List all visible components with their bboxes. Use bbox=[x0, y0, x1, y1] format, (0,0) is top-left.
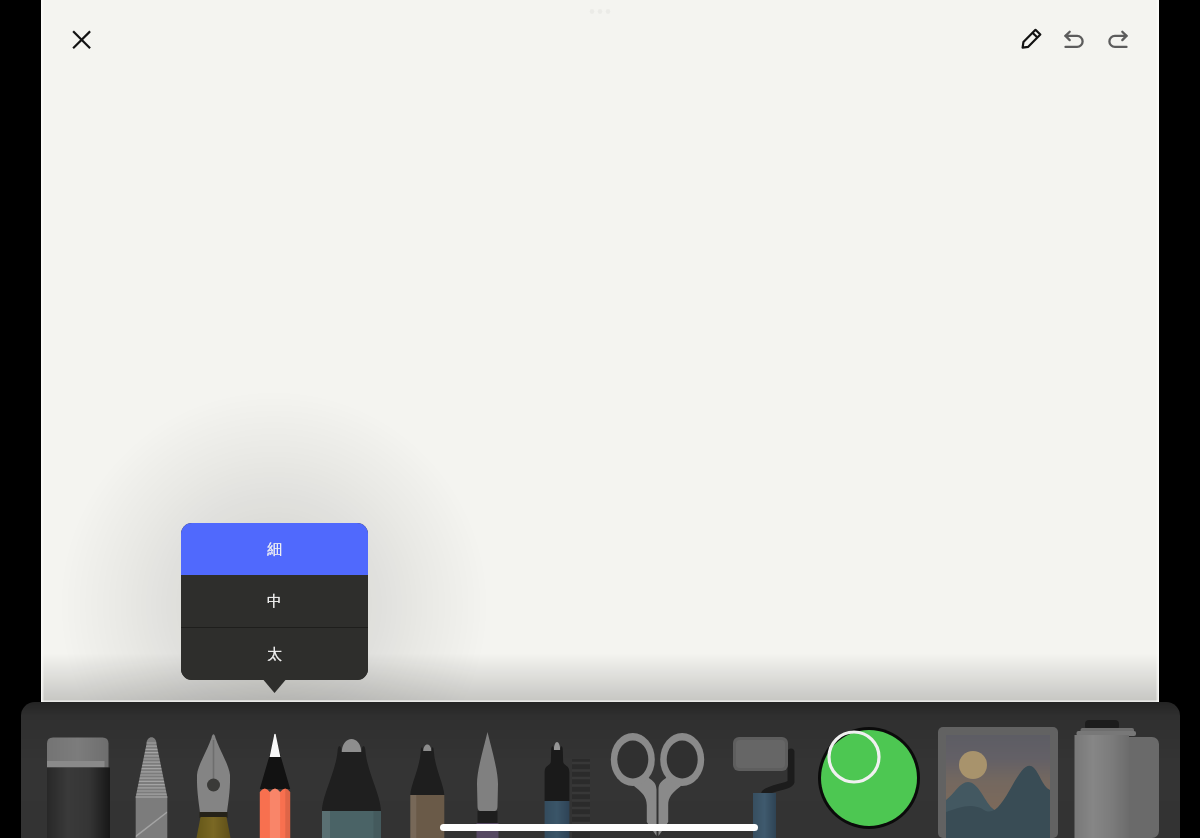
button[interactable]: Ink pen bbox=[538, 736, 580, 838]
button[interactable]: Paper roll bbox=[1072, 720, 1164, 838]
button[interactable]: Marker bbox=[318, 730, 384, 838]
button[interactable]: Colour bbox=[818, 726, 922, 838]
button[interactable]: Scissors bbox=[620, 730, 698, 838]
button[interactable]: 中 bbox=[181, 575, 368, 627]
button[interactable]: Pencil bbox=[128, 732, 174, 838]
button[interactable]: Brush bbox=[470, 726, 506, 838]
staticText: 太 bbox=[267, 645, 282, 664]
button[interactable]: Close bbox=[60, 18, 103, 61]
button[interactable]: Redo bbox=[1098, 20, 1138, 60]
staticText: 中 bbox=[267, 592, 282, 611]
button[interactable]: Fountain pen bbox=[192, 730, 238, 838]
button[interactable]: Paint roller bbox=[730, 730, 796, 838]
button[interactable]: Draw bbox=[1010, 20, 1050, 60]
button[interactable]: Insert image bbox=[937, 726, 1059, 838]
button[interactable]: Undo bbox=[1054, 20, 1094, 60]
button[interactable]: 太 bbox=[181, 628, 368, 680]
button[interactable]: Colour pencil bbox=[253, 730, 297, 838]
staticText: 細 bbox=[267, 540, 282, 559]
button[interactable]: Eraser bbox=[44, 735, 112, 838]
button[interactable]: Brush pen bbox=[405, 736, 449, 838]
button[interactable]: 細 bbox=[181, 523, 368, 575]
